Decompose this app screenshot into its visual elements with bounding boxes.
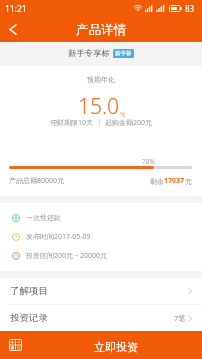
staticText: 发布时间2017-05-09 <box>26 232 91 242</box>
staticText: 预期年化 <box>0 75 202 84</box>
button[interactable]: Back <box>0 17 26 41</box>
staticText: 一次性还款 <box>26 213 61 222</box>
staticText: % <box>120 110 126 119</box>
staticText: 产品详情 <box>76 22 126 38</box>
staticText: 新手标 <box>115 50 132 57</box>
staticText: 理财期限10天 <box>50 118 94 128</box>
button[interactable]: 了解项目 <box>0 278 202 304</box>
staticText: 83 <box>185 3 195 14</box>
button[interactable]: Calculator <box>0 331 30 359</box>
staticText: 17037 <box>164 176 185 186</box>
button[interactable]: 发布时间2017-05-09 <box>0 227 202 246</box>
staticText: 新手专享标 <box>68 48 110 58</box>
staticText: 元 <box>185 177 192 186</box>
staticText: 7笔 <box>174 313 186 323</box>
staticText: 剩余 <box>150 177 164 186</box>
staticText: 15.0 <box>78 92 120 121</box>
staticText: 产品总额80000元 <box>9 176 65 186</box>
staticText: 了解项目 <box>10 285 48 297</box>
button[interactable]: 投资记录 <box>0 305 202 331</box>
button[interactable]: 一次性还款 <box>0 208 202 227</box>
staticText: 立即投资 <box>94 340 138 354</box>
staticText: 11:21 <box>5 3 27 15</box>
staticText: 投资区间200元－20000元 <box>26 251 108 261</box>
staticText: 起购金额200元 <box>105 118 153 128</box>
button[interactable]: 立即投资 <box>30 331 202 359</box>
staticText: 投资记录 <box>10 312 48 324</box>
staticText: 78% <box>142 157 155 166</box>
button[interactable]: 投资区间200元－20000元 <box>0 246 202 265</box>
